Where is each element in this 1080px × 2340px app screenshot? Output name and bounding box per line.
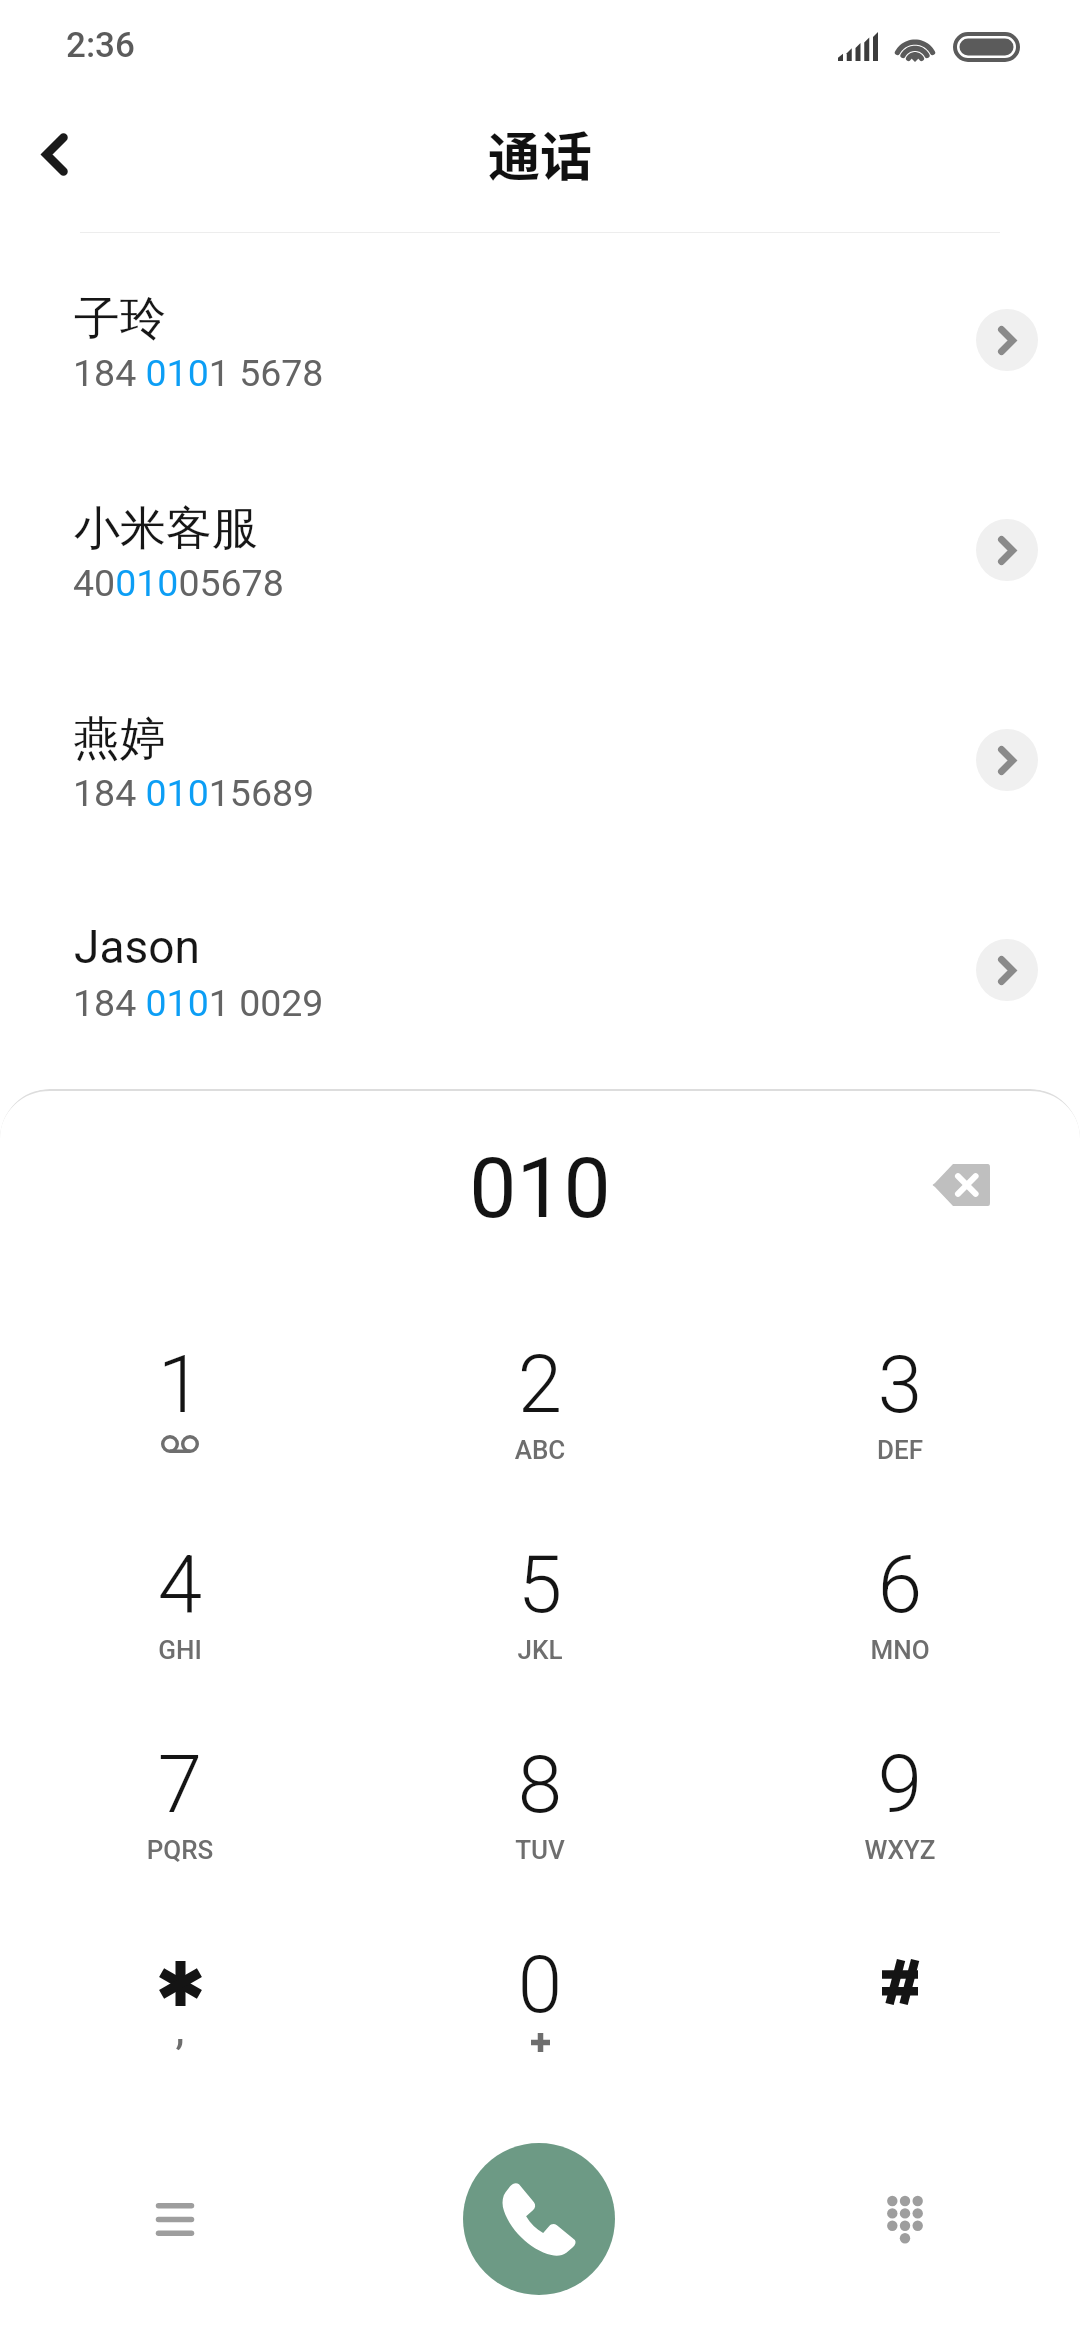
- staticText: 通话: [0, 116, 1080, 191]
- button[interactable]: ,: [0, 1929, 360, 2129]
- staticText: 9: [720, 1738, 1080, 1832]
- staticText: 184 01015689: [73, 771, 315, 815]
- staticText: 燕婷: [74, 710, 166, 768]
- button[interactable]: Contact details: [976, 729, 1038, 791]
- button[interactable]: Call: [463, 2143, 615, 2295]
- button[interactable]: Call log: [115, 2159, 235, 2279]
- button[interactable]: Dialpad: [845, 2160, 965, 2280]
- staticText: 8: [360, 1738, 720, 1832]
- staticText: 子玲: [74, 290, 166, 348]
- button[interactable]: 6: [720, 1529, 1080, 1729]
- button[interactable]: Contact details: [976, 939, 1038, 1001]
- staticText: 小米客服: [74, 500, 258, 558]
- staticText: 4001005678: [73, 561, 284, 605]
- button[interactable]: Contact details: [976, 309, 1038, 371]
- staticText: 0: [360, 1938, 720, 2032]
- button[interactable]: [720, 1929, 1080, 2129]
- button[interactable]: 0: [360, 1929, 720, 2129]
- staticText: 4: [0, 1538, 360, 1632]
- staticText: 2: [360, 1338, 720, 1432]
- staticText: 010: [0, 1139, 1080, 1237]
- staticText: 1: [0, 1338, 360, 1432]
- button[interactable]: 3: [720, 1329, 1080, 1529]
- staticText: WXYZ: [720, 1835, 1080, 1865]
- staticText: Jason: [74, 920, 200, 974]
- button[interactable]: 8: [360, 1729, 720, 1929]
- button[interactable]: 2: [360, 1329, 720, 1529]
- staticText: PQRS: [0, 1835, 360, 1865]
- button[interactable]: 7: [0, 1729, 360, 1929]
- button[interactable]: 5: [360, 1529, 720, 1729]
- button[interactable]: Back: [0, 94, 109, 214]
- button[interactable]: 子玲: [0, 233, 1080, 443]
- button[interactable]: 燕婷: [0, 653, 1080, 863]
- button[interactable]: 4: [0, 1529, 360, 1729]
- staticText: 184 0101 0029: [73, 981, 324, 1025]
- staticText: JKL: [360, 1635, 720, 1665]
- button[interactable]: Backspace: [913, 1144, 1009, 1226]
- button[interactable]: 9: [720, 1729, 1080, 1929]
- staticText: 5: [360, 1538, 720, 1632]
- staticText: DEF: [720, 1435, 1080, 1465]
- staticText: GHI: [0, 1635, 360, 1665]
- button[interactable]: Jason: [0, 863, 1080, 1073]
- staticText: ,: [0, 2007, 360, 2054]
- staticText: 2:36: [66, 25, 135, 66]
- button[interactable]: 1: [0, 1329, 360, 1529]
- staticText: 6: [720, 1538, 1080, 1632]
- button[interactable]: Contact details: [976, 519, 1038, 581]
- staticText: 184 0101 5678: [73, 351, 324, 395]
- staticText: 7: [0, 1738, 360, 1832]
- staticText: MNO: [720, 1635, 1080, 1665]
- staticText: ABC: [360, 1435, 720, 1465]
- staticText: 3: [720, 1338, 1080, 1432]
- staticText: TUV: [360, 1835, 720, 1865]
- button[interactable]: 小米客服: [0, 443, 1080, 653]
